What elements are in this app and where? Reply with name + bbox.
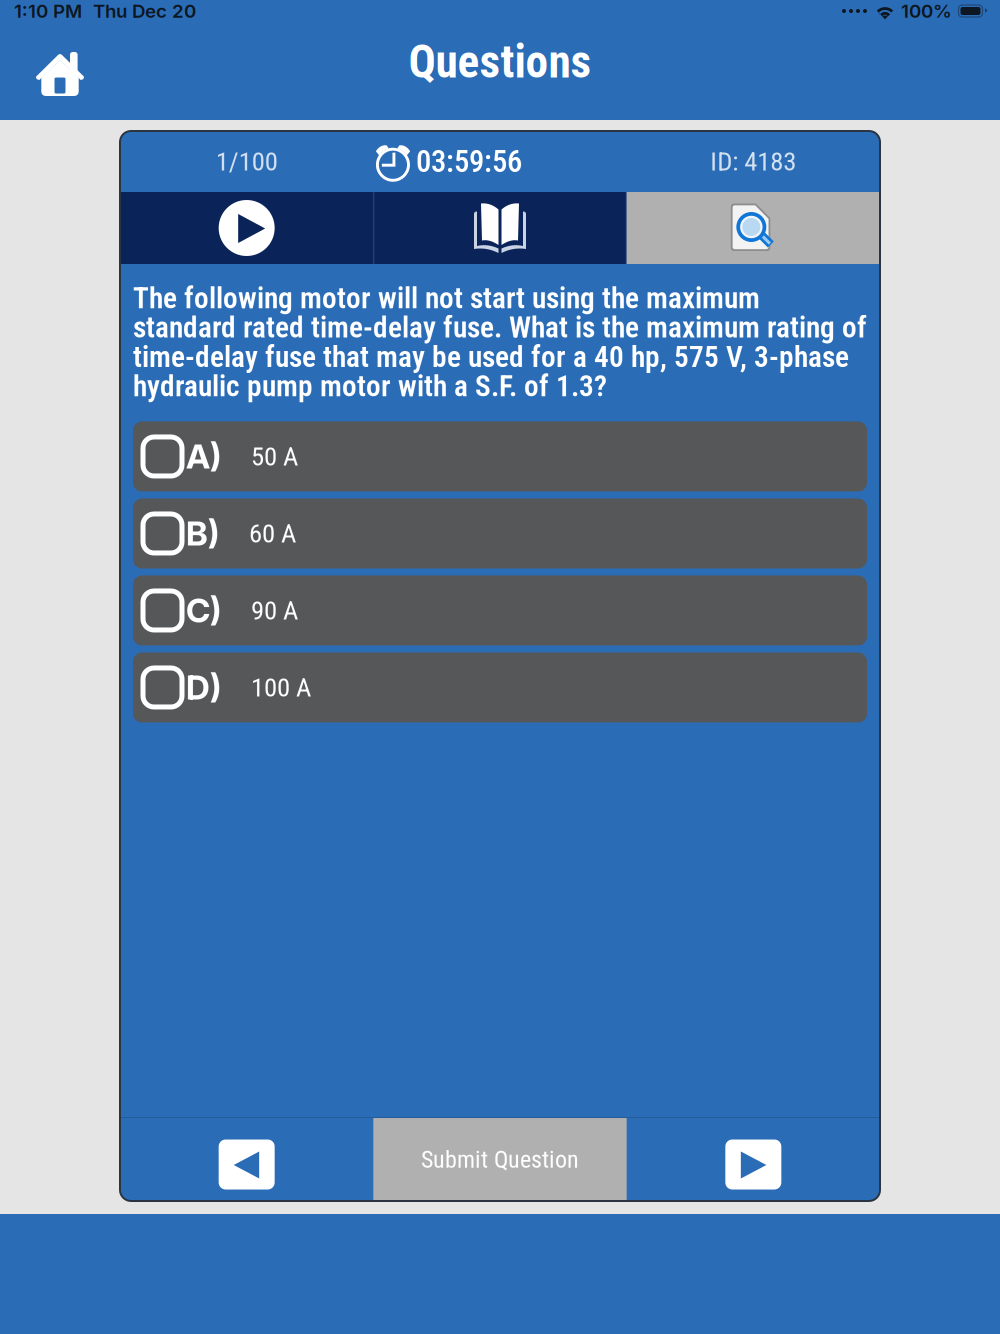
staticText: 1/100 [216, 146, 278, 177]
button[interactable]: D) [133, 652, 867, 722]
staticText: C) [186, 590, 222, 631]
staticText: 1:10 PM [14, 0, 82, 22]
staticText: 03:59:56 [416, 143, 522, 179]
button[interactable]: Search references [627, 192, 880, 264]
staticText: The following motor will not start using… [133, 281, 867, 403]
staticText: 90 A [251, 595, 298, 626]
staticText: Questions [408, 35, 591, 88]
staticText: Thu Dec 20 [93, 0, 196, 22]
staticText: A) [186, 436, 222, 477]
staticText: B) [186, 513, 220, 554]
staticText: 100 A [251, 672, 311, 703]
button[interactable]: Submit Question [373, 1118, 627, 1201]
button[interactable]: Previous question [120, 1118, 373, 1201]
button[interactable]: C) [133, 575, 867, 645]
button[interactable]: Next question [627, 1118, 880, 1201]
staticText: Submit Question [421, 1145, 579, 1173]
button[interactable]: Play audio explanation [120, 192, 373, 264]
button[interactable]: Home [22, 33, 98, 109]
button[interactable]: B) [133, 498, 867, 568]
staticText: 100% [901, 0, 952, 22]
staticText: D) [186, 667, 222, 708]
staticText: 60 A [249, 518, 296, 549]
staticText: 50 A [251, 441, 298, 472]
button[interactable]: Reference book [373, 192, 627, 264]
staticText: ID: 4183 [710, 146, 796, 177]
button[interactable]: A) [133, 421, 867, 491]
